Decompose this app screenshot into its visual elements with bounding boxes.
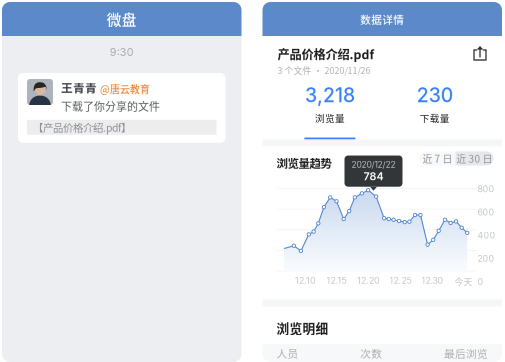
staticText: 近 30 日 [456, 151, 492, 166]
staticText: 王青青 [61, 79, 97, 96]
staticText: 800 [477, 184, 494, 194]
staticText: 12.30 [421, 275, 443, 286]
staticText: 200 [477, 253, 494, 264]
staticText: @唐云教育 [100, 82, 150, 96]
button[interactable]: 3,218 [277, 83, 382, 139]
staticText: 人员 [276, 345, 298, 361]
staticText: 12.20 [357, 275, 380, 286]
button[interactable]: 近 30 日 [455, 151, 493, 165]
staticText: 微盘 [107, 8, 137, 30]
staticText: 下载了你分享的文件 [61, 98, 160, 114]
staticText: 12.25 [389, 275, 411, 286]
staticText: 近 7 日 [422, 151, 452, 166]
staticText: 9:30 [110, 45, 134, 58]
staticText: 浏览明细 [276, 318, 328, 337]
staticText: 最后浏览 [444, 345, 488, 361]
button[interactable]: 分享 [473, 45, 487, 61]
staticText: 【产品价格介绍.pdf】 [33, 120, 131, 135]
staticText: 12.15 [326, 275, 346, 286]
button[interactable]: 230 [382, 83, 487, 139]
staticText: 230 [417, 83, 453, 107]
staticText: 3 个文件 · 2020/11/26 [277, 64, 370, 76]
staticText: 400 [477, 230, 495, 241]
staticText: 600 [477, 207, 494, 217]
staticText: 下载量 [420, 111, 450, 125]
staticText: 数据详情 [360, 11, 404, 27]
staticText: 12.10 [295, 275, 316, 286]
staticText: 今天 [454, 275, 472, 288]
staticText: 784 [363, 170, 383, 183]
staticText: 浏览量 [315, 111, 345, 125]
staticText: 0 [477, 276, 483, 287]
button[interactable]: 近 7 日 [419, 151, 455, 165]
staticText: 次数 [360, 345, 382, 361]
staticText: 产品价格介绍.pdf [277, 45, 374, 63]
staticText: 浏览量趋势 [276, 154, 331, 171]
staticText: 3,218 [305, 83, 355, 107]
staticText: 2020/12/22 [351, 159, 395, 170]
